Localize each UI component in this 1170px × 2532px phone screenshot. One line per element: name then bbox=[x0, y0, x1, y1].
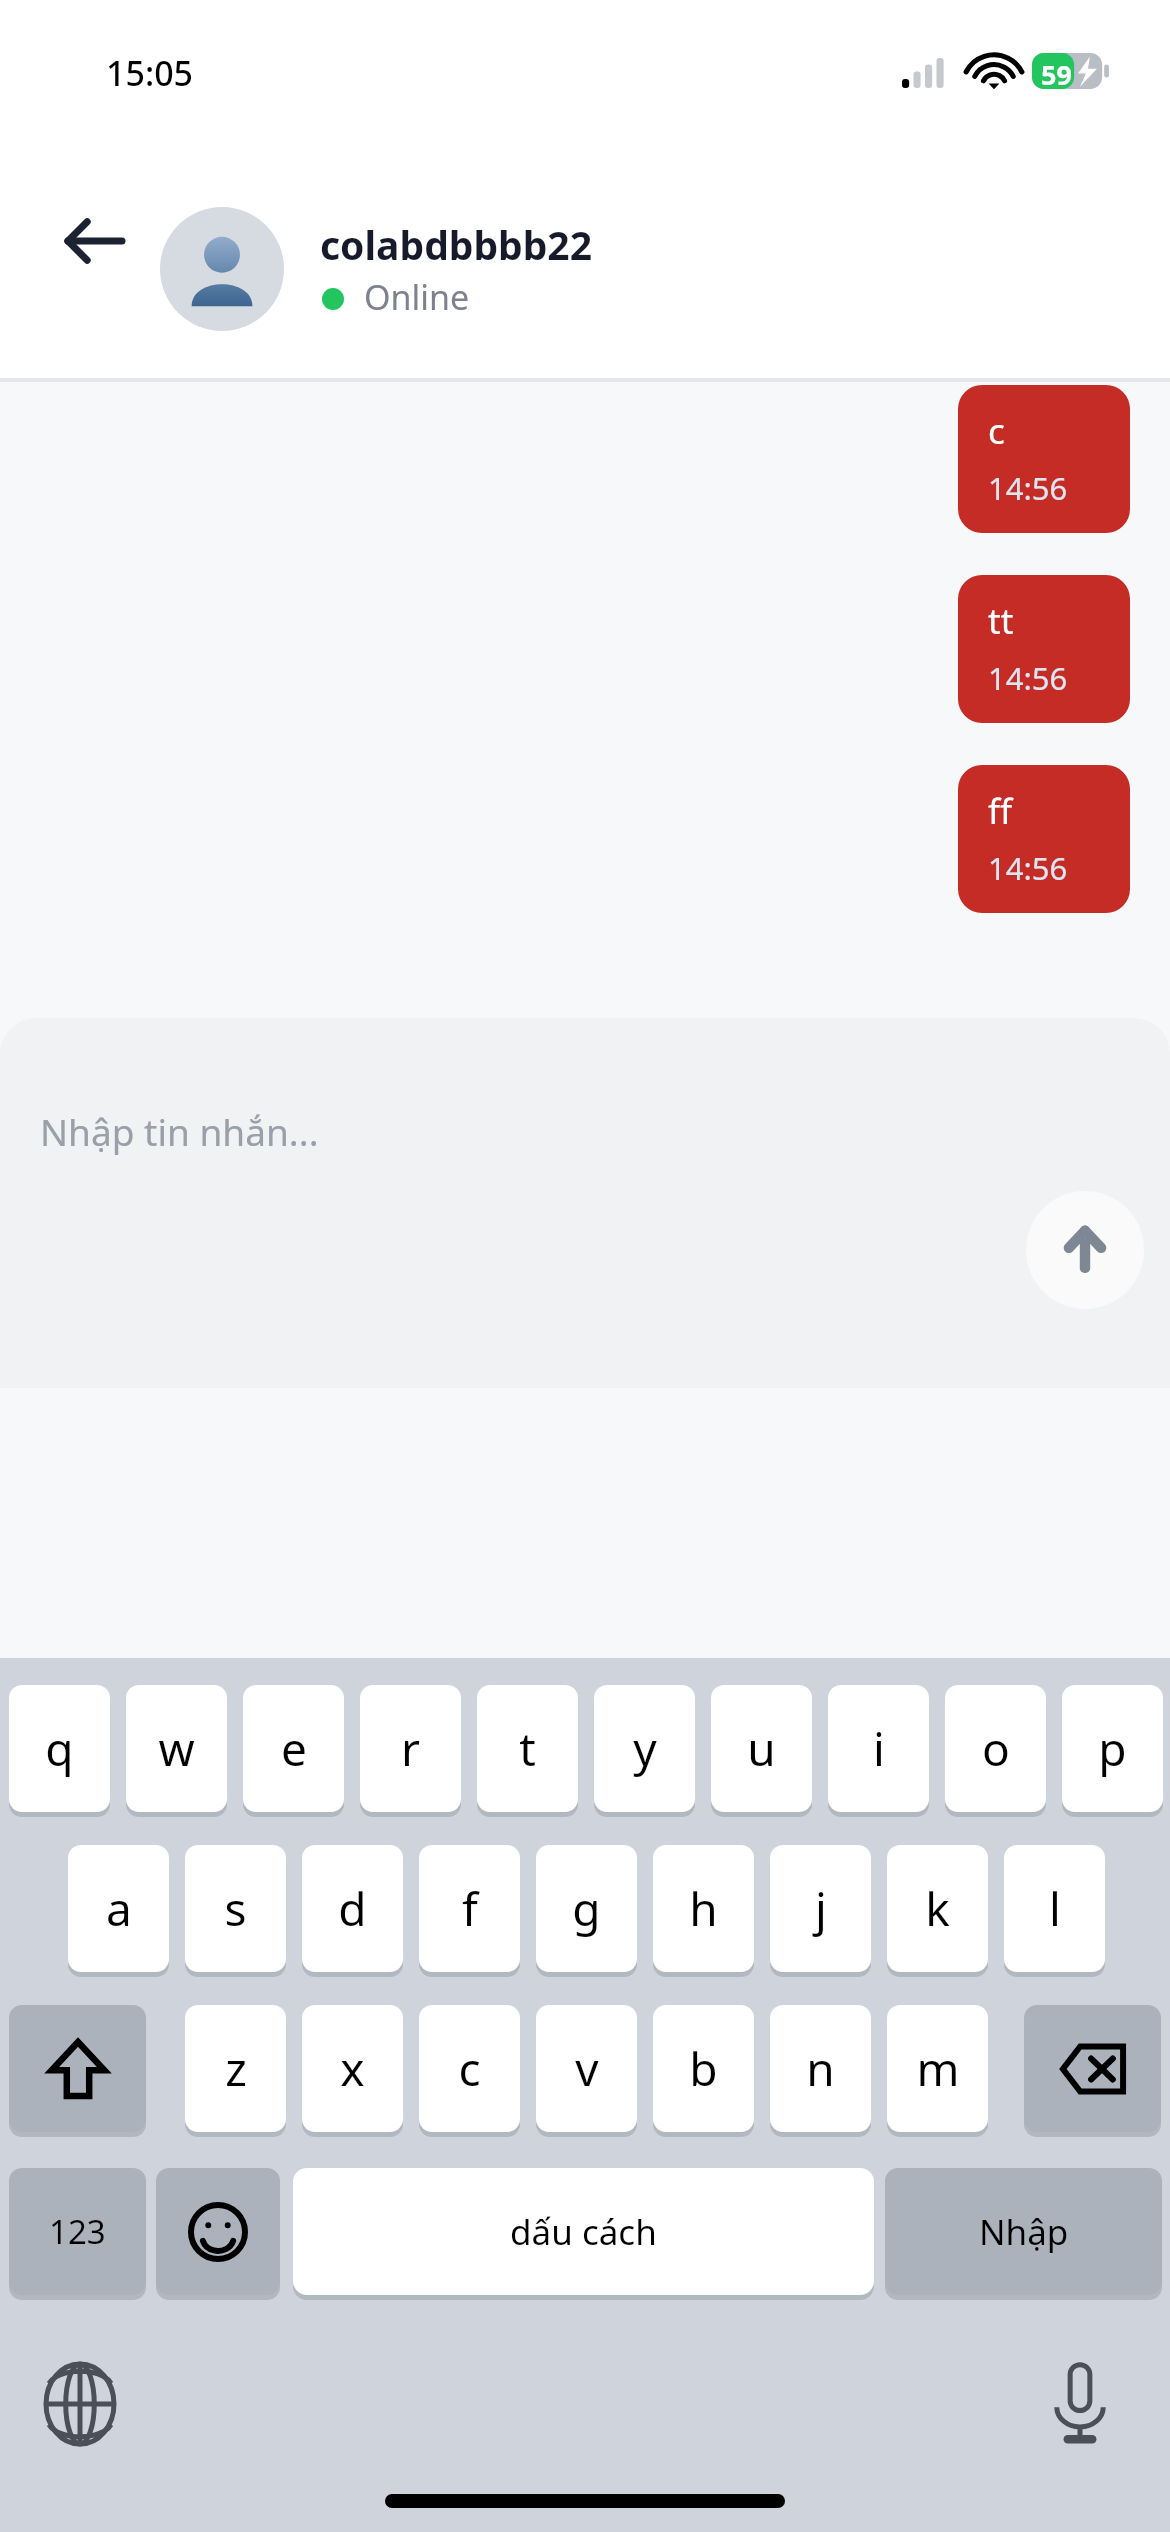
staticText: s bbox=[224, 1877, 247, 1940]
button[interactable]: c bbox=[958, 385, 1130, 533]
button[interactable]: Nhập tin nhắn... bbox=[40, 1106, 319, 1156]
staticText: p bbox=[1098, 1717, 1127, 1780]
staticText: h bbox=[689, 1877, 718, 1940]
staticText: e bbox=[281, 1717, 307, 1780]
staticText: c bbox=[988, 407, 1005, 455]
button[interactable]: f bbox=[419, 1845, 520, 1972]
button[interactable]: q bbox=[9, 1685, 110, 1812]
staticText: k bbox=[925, 1877, 950, 1940]
button[interactable]: Shift bbox=[9, 2005, 146, 2132]
staticText: 15:05 bbox=[106, 50, 194, 96]
button[interactable]: y bbox=[594, 1685, 695, 1812]
staticText: 59 bbox=[1041, 56, 1072, 93]
button[interactable]: x bbox=[302, 2005, 403, 2132]
button[interactable]: s bbox=[185, 1845, 286, 1972]
staticText: b bbox=[689, 2037, 718, 2100]
button[interactable]: c bbox=[419, 2005, 520, 2132]
staticText: 123 bbox=[49, 2209, 106, 2254]
staticText: a bbox=[106, 1877, 132, 1940]
staticText: Nhập bbox=[979, 2208, 1069, 2256]
button[interactable]: j bbox=[770, 1845, 871, 1972]
button[interactable]: l bbox=[1004, 1845, 1105, 1972]
staticText: colabdbbbb22 bbox=[320, 218, 592, 271]
button[interactable]: tt bbox=[958, 575, 1130, 723]
button[interactable]: Back bbox=[38, 186, 148, 296]
button[interactable]: Profile picture bbox=[160, 207, 284, 331]
button[interactable]: b bbox=[653, 2005, 754, 2132]
button[interactable]: z bbox=[185, 2005, 286, 2132]
staticText: q bbox=[45, 1717, 74, 1780]
staticText: w bbox=[158, 1717, 195, 1780]
staticText: c bbox=[458, 2037, 481, 2100]
button[interactable]: Nhập bbox=[885, 2168, 1162, 2295]
staticText: g bbox=[572, 1877, 601, 1940]
button[interactable]: 123 bbox=[9, 2168, 146, 2295]
staticText: Online bbox=[364, 274, 470, 320]
staticText: d bbox=[338, 1877, 367, 1940]
button[interactable]: t bbox=[477, 1685, 578, 1812]
staticText: f bbox=[462, 1877, 478, 1940]
staticText: 14:56 bbox=[988, 847, 1068, 889]
button[interactable]: dấu cách bbox=[293, 2168, 874, 2295]
button[interactable]: n bbox=[770, 2005, 871, 2132]
button[interactable]: v bbox=[536, 2005, 637, 2132]
button[interactable]: h bbox=[653, 1845, 754, 1972]
button[interactable]: g bbox=[536, 1845, 637, 1972]
button[interactable]: i bbox=[828, 1685, 929, 1812]
button[interactable]: k bbox=[887, 1845, 988, 1972]
staticText: 14:56 bbox=[988, 467, 1068, 509]
button[interactable]: Dictation bbox=[1022, 2346, 1138, 2462]
staticText: tt bbox=[988, 597, 1014, 645]
staticText: y bbox=[633, 1717, 657, 1780]
staticText: i bbox=[873, 1717, 885, 1780]
button[interactable]: Send bbox=[1026, 1191, 1144, 1309]
staticText: t bbox=[519, 1717, 536, 1780]
button[interactable]: Backspace bbox=[1024, 2005, 1161, 2132]
button[interactable]: ff bbox=[958, 765, 1130, 913]
button[interactable]: p bbox=[1062, 1685, 1163, 1812]
staticText: v bbox=[575, 2037, 599, 2100]
staticText: o bbox=[982, 1717, 1010, 1780]
staticText: l bbox=[1049, 1877, 1061, 1940]
staticText: u bbox=[747, 1717, 776, 1780]
button[interactable]: a bbox=[68, 1845, 169, 1972]
staticText: j bbox=[815, 1877, 827, 1940]
staticText: r bbox=[401, 1717, 420, 1780]
staticText: z bbox=[225, 2037, 247, 2100]
staticText: m bbox=[916, 2037, 960, 2100]
staticText: ff bbox=[988, 787, 1013, 835]
button[interactable]: r bbox=[360, 1685, 461, 1812]
staticText: 14:56 bbox=[988, 657, 1068, 699]
button[interactable]: u bbox=[711, 1685, 812, 1812]
button[interactable]: d bbox=[302, 1845, 403, 1972]
button[interactable]: o bbox=[945, 1685, 1046, 1812]
button[interactable]: w bbox=[126, 1685, 227, 1812]
staticText: n bbox=[806, 2037, 835, 2100]
staticText: dấu cách bbox=[510, 2208, 657, 2256]
button[interactable]: Emoji bbox=[156, 2168, 280, 2295]
staticText: x bbox=[340, 2037, 365, 2100]
button[interactable]: Change keyboard bbox=[22, 2346, 138, 2462]
button[interactable]: m bbox=[887, 2005, 988, 2132]
button[interactable]: e bbox=[243, 1685, 344, 1812]
